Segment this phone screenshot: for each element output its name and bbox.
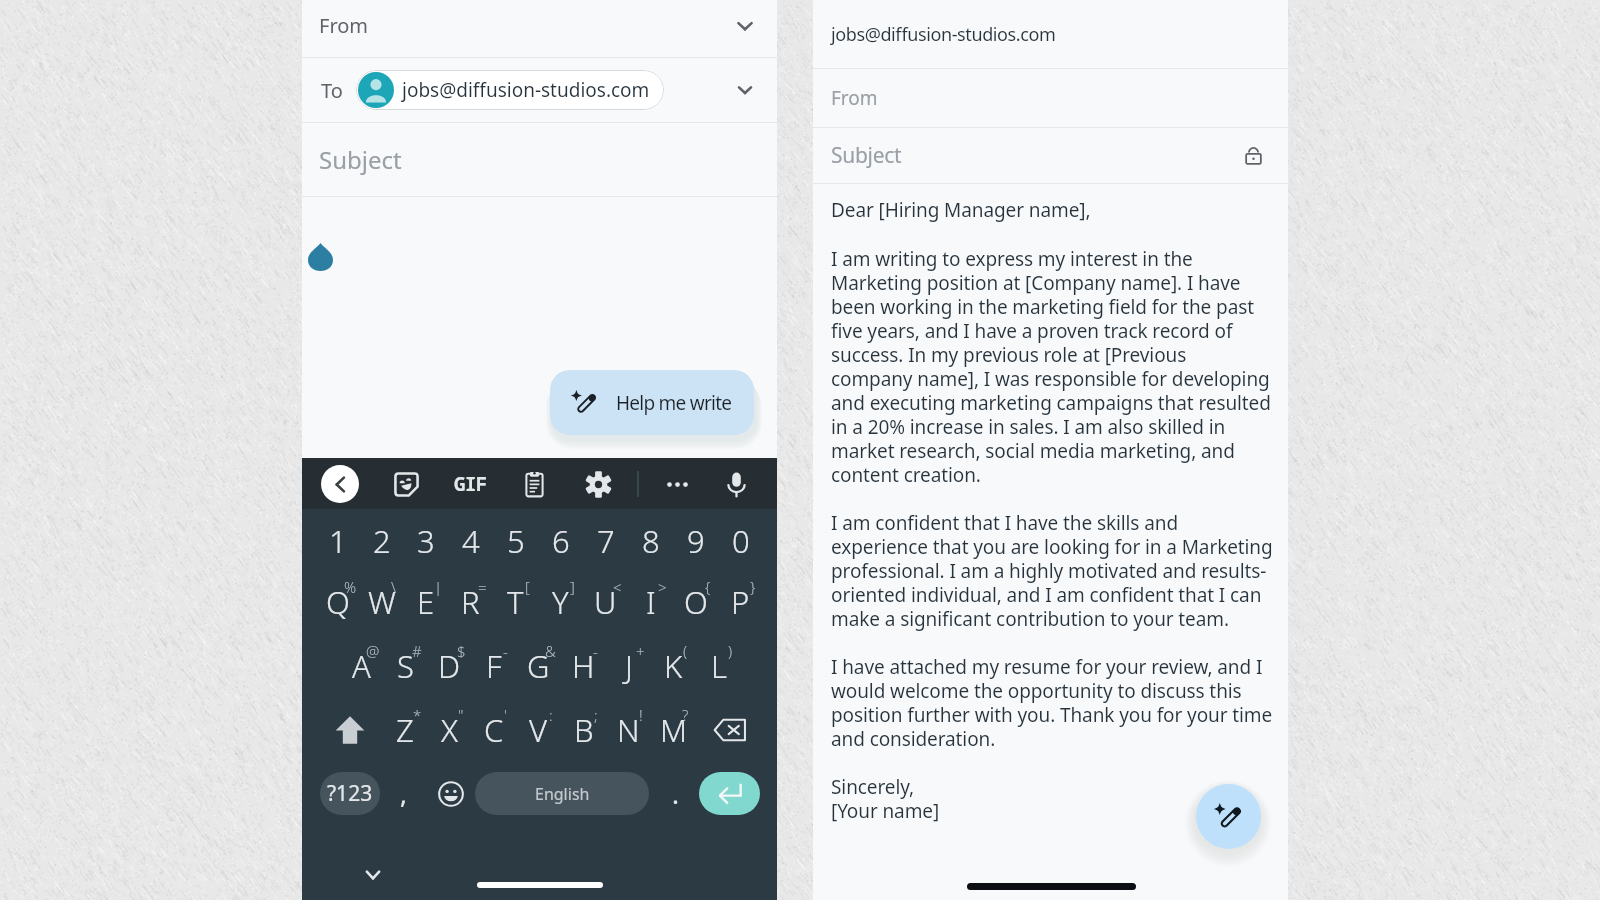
button[interactable]: X [427,698,471,762]
staticText: 2 [373,520,391,562]
button[interactable]: W [360,570,404,634]
button[interactable]: U [583,570,628,634]
button[interactable]: 7 [583,512,628,570]
button[interactable]: J [606,634,651,698]
staticText: U [594,581,617,623]
button[interactable]: 3 [404,512,448,570]
button[interactable]: Y [538,570,583,634]
button[interactable]: , [380,772,427,815]
staticText: English [535,783,590,805]
staticText: 7 [597,520,615,562]
staticText: { [705,577,711,597]
staticText: M [660,709,688,751]
staticText: D [438,645,461,687]
button[interactable]: 2 [360,512,404,570]
staticText: ? [682,705,689,725]
button[interactable]: 4 [448,512,493,570]
staticText: } [750,577,756,597]
staticText: - [503,641,508,661]
button[interactable]: S [383,634,427,698]
button[interactable]: M [651,698,696,762]
button[interactable]: Voice input [719,467,753,501]
staticText: % [344,577,357,597]
staticText: 0 [732,520,750,562]
button[interactable]: Enter [699,772,760,815]
button[interactable]: 1 [316,512,360,570]
button[interactable]: Help me write [550,370,754,435]
staticText: | [434,577,443,597]
staticText: W [368,581,396,623]
button[interactable]: O [673,570,718,634]
staticText: $ [457,641,466,661]
staticText: : [549,705,553,725]
button[interactable]: D [427,634,471,698]
button[interactable]: From [302,0,777,57]
staticText: K [664,645,683,687]
button[interactable]: T [493,570,538,634]
staticText: 5 [507,520,525,562]
button[interactable]: L [696,634,741,698]
button[interactable]: To [302,58,777,122]
staticText: ] [570,577,575,597]
staticText: I [646,581,656,623]
staticText: ?123 [327,779,373,808]
staticText: Subject [319,143,402,176]
button[interactable]: English [475,772,649,815]
button[interactable]: Clipboard [517,467,551,501]
button[interactable]: F [471,634,516,698]
button[interactable]: Subject [302,123,777,196]
staticText: & [545,641,556,661]
button[interactable]: Help me write [1196,784,1261,849]
button[interactable]: Hide keyboard [359,861,387,889]
staticText: X [441,709,458,751]
button[interactable]: Emoji [427,772,475,815]
staticText: < [613,577,622,597]
button[interactable]: GIF [453,471,487,497]
button[interactable]: B [561,698,606,762]
button[interactable]: 9 [673,512,718,570]
staticText: 6 [552,520,570,562]
button[interactable]: E [404,570,448,634]
staticText: P [731,581,750,623]
staticText: To [321,77,343,104]
button[interactable]: ?123 [320,772,380,815]
button[interactable]: 0 [718,512,763,570]
button[interactable]: R [448,570,493,634]
staticText: B [574,709,594,751]
staticText: N [617,709,640,751]
button[interactable]: Settings [581,467,615,501]
staticText: # [412,641,422,661]
button[interactable]: Q [316,570,360,634]
button[interactable]: P [718,570,763,634]
button[interactable]: Z [383,698,427,762]
button[interactable]: jobs@diffusion-studios.com [356,70,664,110]
staticText: ( [683,641,688,661]
button[interactable]: jobs@diffusion-studios.com [813,0,1288,68]
staticText: O [684,581,708,623]
button[interactable]: Backspace [696,698,763,762]
button[interactable]: C [471,698,516,762]
button[interactable]: H [561,634,606,698]
button[interactable]: Back [321,465,359,503]
staticText: ; [594,705,598,725]
staticText: Subject [831,141,902,170]
button[interactable]: Stickers [389,467,423,501]
button[interactable]: Subject [813,128,1288,183]
staticText: E [417,581,435,623]
button[interactable]: V [516,698,561,762]
button[interactable]: 6 [538,512,583,570]
button[interactable]: 5 [493,512,538,570]
button[interactable]: 8 [628,512,673,570]
staticText: L [711,645,727,687]
button[interactable]: A [339,634,383,698]
button[interactable]: K [651,634,696,698]
button[interactable]: I [628,570,673,634]
button[interactable]: Shift [316,698,383,762]
button[interactable]: G [516,634,561,698]
button[interactable]: . [651,772,699,815]
button[interactable]: N [606,698,651,762]
staticText: Q [326,581,350,623]
button[interactable]: More [660,467,694,501]
staticText: " [458,705,464,725]
button[interactable]: From [813,69,1288,127]
